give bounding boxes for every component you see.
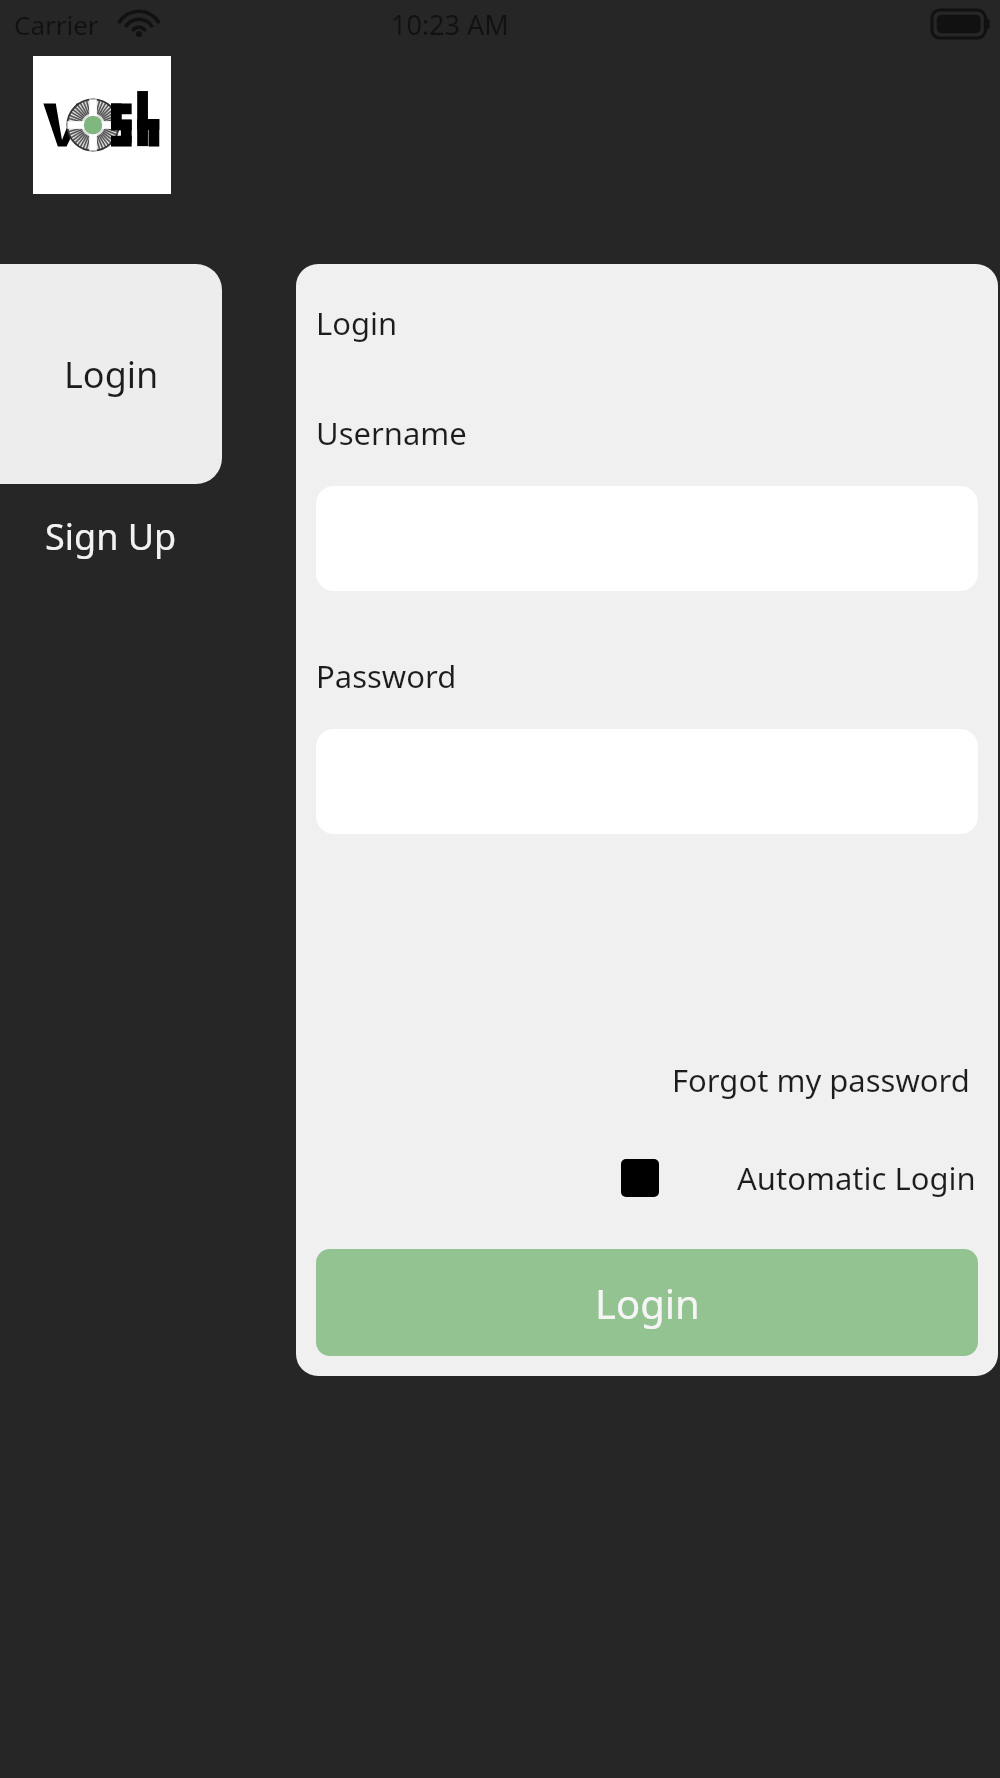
staticText: Login [64,350,159,399]
staticText: 10:23 AM [391,6,509,43]
staticText: Forgot my password [672,1059,970,1101]
button[interactable]: Login [316,1249,978,1356]
staticText: Automatic Login [737,1157,976,1199]
staticText: Username [316,412,467,454]
staticText: Login [595,1276,700,1330]
staticText: Carrier [14,7,99,42]
staticText: Sign Up [45,512,177,561]
staticText: Password [316,655,457,697]
staticText: Login [316,302,398,344]
button[interactable]: Automatic Login [621,1153,976,1203]
button[interactable]: Login [0,264,222,484]
button[interactable]: Forgot my password [666,1053,976,1107]
button[interactable]: Sign Up [0,484,222,588]
